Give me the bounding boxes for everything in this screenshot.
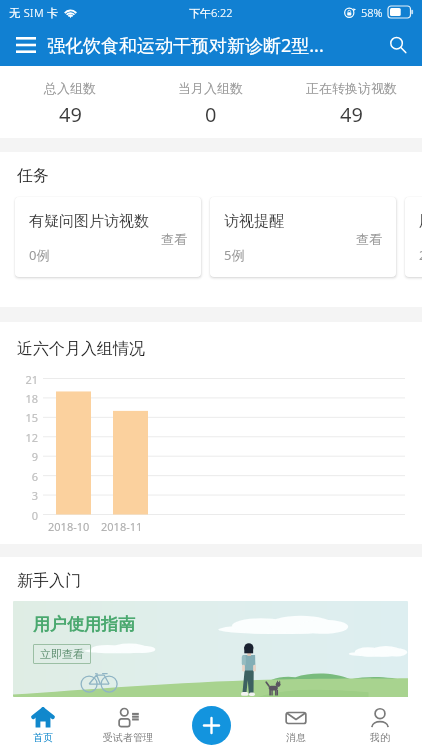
staticText: 18 xyxy=(25,391,38,405)
button[interactable]: Add xyxy=(192,706,231,745)
staticText: 21 xyxy=(25,372,38,386)
staticText: 首页 xyxy=(33,731,53,744)
staticText: 访视提醒 xyxy=(224,212,284,231)
staticText: 0 xyxy=(205,101,217,128)
staticText: 0 xyxy=(31,508,38,522)
staticText: 0例 xyxy=(29,246,50,264)
button[interactable]: 受试者管理 xyxy=(85,700,170,750)
button[interactable]: 当月入组数 xyxy=(140,66,281,138)
staticText: 有疑问图片访视数 xyxy=(29,212,149,231)
staticText: 15 xyxy=(25,410,38,424)
button[interactable]: 我的 xyxy=(338,700,422,750)
button[interactable]: 消息 xyxy=(254,700,338,750)
staticText: 9 xyxy=(31,449,38,463)
staticText: 强化饮食和运动干预对新诊断2型... xyxy=(47,33,378,58)
staticText: 5例 xyxy=(224,246,245,264)
staticText: 2例 xyxy=(419,246,422,264)
staticText: 查看 xyxy=(356,231,382,247)
staticText: 总入组数 xyxy=(44,80,96,96)
staticText: 49 xyxy=(59,101,82,128)
staticText: 立即查看 xyxy=(40,647,84,661)
button[interactable]: 有疑问图片访视数 xyxy=(15,197,201,277)
staticText: 历史访视 xyxy=(419,212,422,231)
staticText: 任务 xyxy=(17,166,49,186)
staticText: 查看 xyxy=(161,231,187,247)
button[interactable]: Search xyxy=(382,29,414,61)
staticText: 当月入组数 xyxy=(178,80,243,96)
staticText: 49 xyxy=(340,101,363,128)
button[interactable]: 历史访视 xyxy=(405,197,422,277)
staticText: 下午6:22 xyxy=(189,5,233,20)
staticText: 12 xyxy=(25,430,38,444)
button[interactable]: 总入组数 xyxy=(0,66,140,138)
button[interactable]: Menu xyxy=(10,29,42,61)
staticText: 3 xyxy=(31,488,38,502)
staticText: 我的 xyxy=(370,731,390,744)
staticText: 正在转换访视数 xyxy=(306,80,397,96)
staticText: 用户使用指南 xyxy=(33,614,135,635)
button[interactable]: 访视提醒 xyxy=(210,197,396,277)
button[interactable]: 首页 xyxy=(0,700,85,750)
staticText: 58% xyxy=(361,5,383,20)
staticText: 2018-10 xyxy=(48,519,90,534)
staticText: 受试者管理 xyxy=(103,731,153,744)
staticText: 无 SIM 卡 xyxy=(9,5,59,20)
staticText: 2018-11 xyxy=(101,519,143,534)
staticText: 消息 xyxy=(286,731,306,744)
staticText: 6 xyxy=(31,469,38,483)
button[interactable]: 正在转换访视数 xyxy=(281,66,422,138)
button[interactable]: 用户使用指南 xyxy=(13,601,408,697)
staticText: 近六个月入组情况 xyxy=(17,339,145,359)
staticText: 新手入门 xyxy=(17,571,81,591)
